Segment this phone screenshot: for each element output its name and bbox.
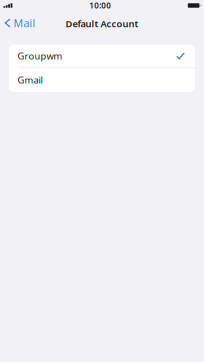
staticText: 10:00: [89, 0, 111, 11]
staticText: Default Account: [65, 17, 138, 30]
staticText: Mail: [13, 16, 35, 30]
button[interactable]: Groupwm: [9, 44, 195, 67]
staticText: Groupwm: [17, 50, 62, 62]
button[interactable]: Gmail: [9, 68, 195, 92]
button[interactable]: Mail: [0, 12, 40, 34]
staticText: Gmail: [17, 74, 42, 86]
